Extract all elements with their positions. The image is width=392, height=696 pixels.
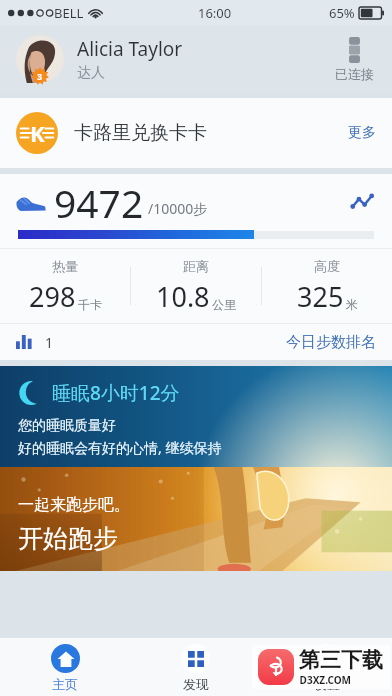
button[interactable]: 高度 [262, 249, 392, 323]
staticText: 米 [346, 297, 358, 312]
button[interactable]: 距离 [131, 249, 261, 323]
staticText: 298 [29, 278, 76, 315]
button[interactable]: 设置 [261, 638, 392, 696]
staticText: 一起来跑步吧。 [18, 495, 130, 515]
staticText: 已连接 [335, 66, 374, 82]
staticText: 发现 [183, 676, 209, 692]
button[interactable]: 一起来跑步吧。 [0, 467, 392, 571]
staticText: 开始跑步 [18, 523, 118, 554]
button[interactable]: 热量 [0, 249, 130, 323]
staticText: 睡眠8小时12分 [52, 380, 180, 406]
staticText: D3XZ.COM [299, 673, 351, 687]
staticText: 公里 [212, 297, 236, 312]
staticText: 设置 [314, 676, 340, 692]
staticText: 热量 [52, 258, 78, 274]
staticText: 高度 [314, 258, 340, 274]
button[interactable]: 主页 [0, 638, 130, 696]
button[interactable]: Step trend chart [348, 188, 376, 216]
staticText: 距离 [183, 258, 209, 274]
staticText: 卡路里兑换卡卡 [74, 121, 348, 145]
button[interactable]: 发现 [130, 638, 261, 696]
staticText: /10000步 [148, 199, 208, 218]
staticText: 第三下载 [299, 647, 383, 673]
staticText: 更多 [348, 124, 376, 142]
staticText: 主页 [52, 676, 78, 692]
staticText: 今日步数排名 [286, 333, 376, 352]
staticText: Alicia Taylor [77, 36, 183, 62]
button[interactable]: 9472 [0, 174, 392, 230]
button[interactable]: 3 [0, 26, 392, 92]
staticText: K [30, 118, 45, 148]
staticText: 325 [297, 278, 344, 315]
button[interactable]: 1 [0, 324, 392, 360]
staticText: 1 [45, 333, 54, 352]
staticText: BELL [54, 4, 84, 22]
staticText: 达人 [77, 64, 105, 82]
staticText: 您的睡眠质量好 [18, 417, 116, 435]
button[interactable]: 睡眠8小时12分 [0, 366, 392, 467]
staticText: 好的睡眠会有好的心情, 继续保持 [18, 438, 222, 457]
staticText: 10.8 [156, 278, 210, 315]
staticText: 9472 [54, 176, 144, 229]
staticText: 16:00 [198, 4, 232, 22]
staticText: 3 [37, 70, 43, 82]
button[interactable]: Device connected [333, 37, 376, 82]
staticText: 千卡 [78, 297, 102, 312]
button[interactable]: K [0, 98, 392, 168]
staticText: 65% [329, 4, 355, 22]
